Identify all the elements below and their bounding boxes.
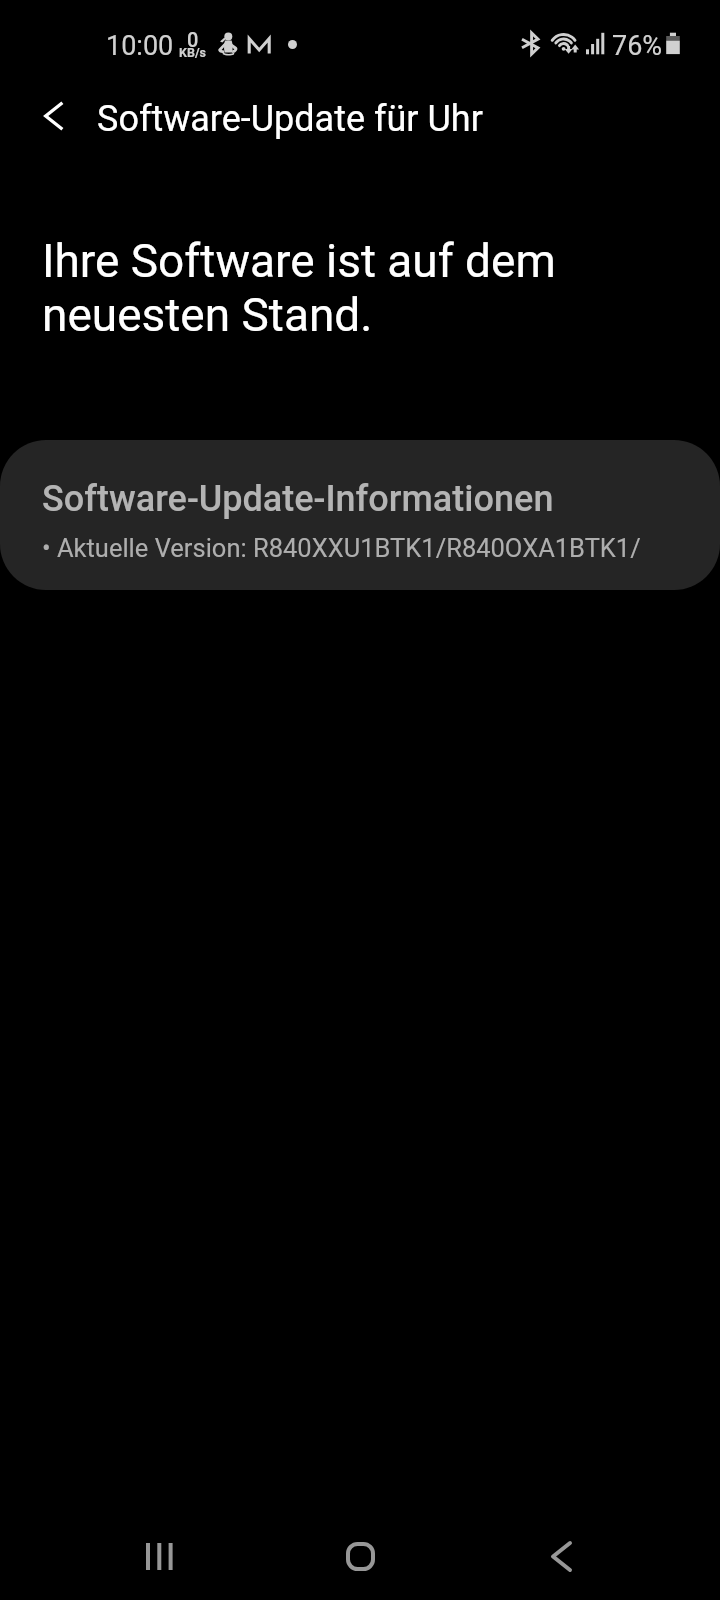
- staticText: Software-Update-Informationen: [42, 478, 554, 520]
- staticText: 0: [187, 28, 199, 51]
- button[interactable]: Home: [320, 1516, 400, 1596]
- staticText: 10:00: [106, 30, 174, 62]
- staticText: • Aktuelle Version: R840XXU1BTK1/R840OXA…: [42, 533, 641, 563]
- staticText: KB/s: [179, 45, 207, 60]
- button[interactable]: Recent apps: [119, 1516, 199, 1596]
- staticText: Software-Update für Uhr: [97, 98, 483, 140]
- staticText: Ihre Software ist auf dem neuesten Stand…: [42, 234, 682, 342]
- staticText: 76%: [612, 30, 663, 62]
- button[interactable]: Back: [521, 1516, 601, 1596]
- button[interactable]: Software-Update-Informationen: [0, 440, 720, 590]
- button[interactable]: Navigate up: [20, 82, 88, 150]
